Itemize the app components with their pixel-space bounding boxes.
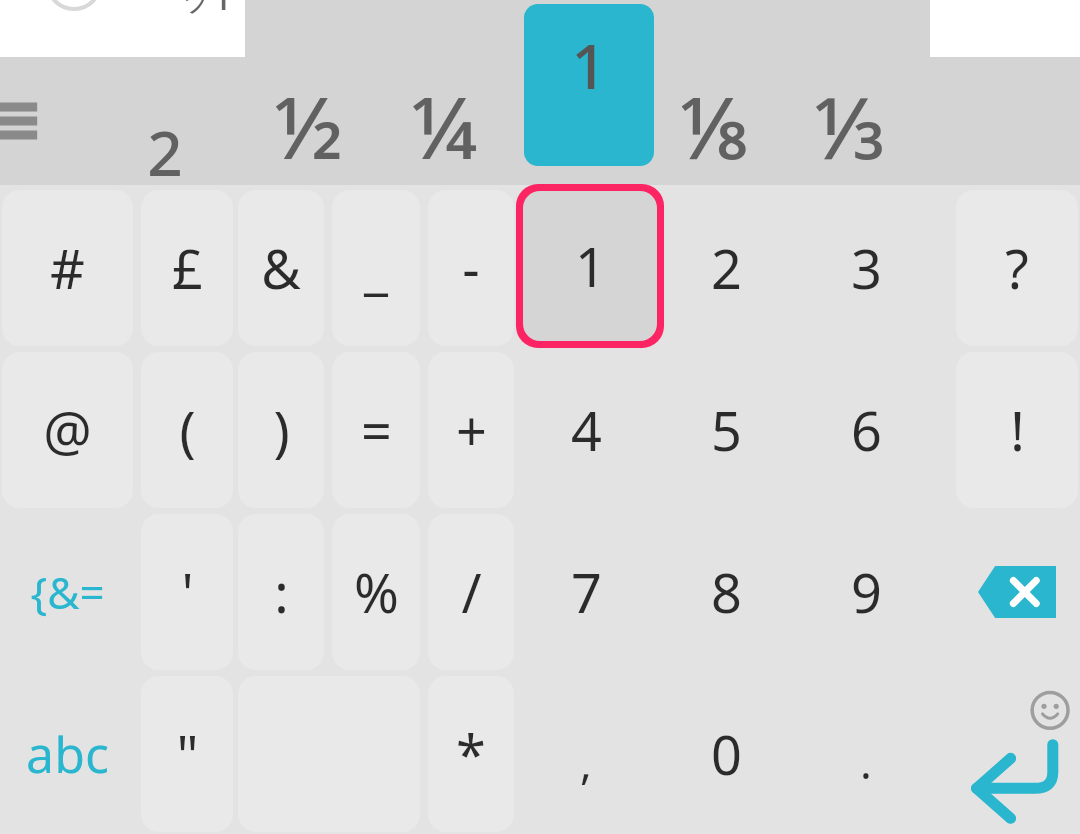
button[interactable]: abc (2, 676, 133, 832)
button[interactable]: Delete (956, 514, 1078, 670)
button[interactable]: % (332, 514, 420, 670)
button[interactable]: £ (141, 190, 233, 346)
button[interactable]: 9 (812, 514, 920, 670)
button[interactable]: ( (141, 352, 233, 508)
staticText: £ (172, 231, 203, 305)
staticText: ' (181, 555, 194, 629)
staticText: , (580, 732, 592, 792)
button[interactable]: ⅛ (655, 67, 775, 177)
button[interactable]: 8 (672, 514, 780, 670)
button[interactable]: ¼ (383, 67, 503, 177)
button[interactable]: # (2, 190, 133, 346)
button[interactable]: 0 (672, 676, 780, 832)
button[interactable]: " (141, 676, 233, 832)
button[interactable]: 3 (812, 190, 920, 346)
staticText: ッ1 (178, 0, 233, 20)
button[interactable]: @ (2, 352, 133, 508)
button[interactable]: * (428, 676, 514, 832)
staticText: ! (1010, 393, 1025, 467)
button[interactable]: ? (956, 190, 1078, 346)
staticText: 1 (575, 229, 606, 303)
staticText: / (461, 555, 482, 629)
button[interactable]: = (332, 352, 420, 508)
staticText: . (860, 732, 872, 792)
button[interactable]: & (238, 190, 324, 346)
staticText: abc (26, 720, 109, 788)
staticText: + (456, 393, 487, 467)
button[interactable]: 5 (672, 352, 780, 508)
button[interactable]: ½ (248, 67, 368, 177)
staticText: ( (179, 393, 196, 467)
staticText: ? (1005, 231, 1029, 305)
staticText: 2 (711, 231, 742, 305)
button[interactable]: : (238, 514, 324, 670)
button[interactable]: 1 (516, 184, 664, 348)
button[interactable]: , (532, 676, 640, 832)
button[interactable]: _ (332, 190, 420, 346)
button[interactable]: 2 (672, 190, 780, 346)
button[interactable]: + (428, 352, 514, 508)
staticText: ⅓ (814, 67, 887, 177)
staticText: = (361, 393, 392, 467)
staticText: ½ (274, 67, 343, 177)
button[interactable]: 2 (105, 97, 225, 207)
button[interactable]: ⅓ (790, 67, 910, 177)
staticText: @ (43, 393, 92, 467)
staticText: 8 (711, 555, 742, 629)
staticText: 3 (851, 231, 882, 305)
staticText: 0 (711, 717, 742, 791)
button[interactable]: 4 (532, 352, 640, 508)
button[interactable]: 6 (812, 352, 920, 508)
button[interactable]: . (812, 676, 920, 832)
staticText: _ (364, 231, 388, 305)
button[interactable]: 7 (532, 514, 640, 670)
staticText: {&= (30, 562, 105, 622)
staticText: ⅛ (679, 67, 752, 177)
button[interactable]: Enter (944, 676, 1080, 832)
staticText: " (176, 717, 199, 791)
button[interactable]: / (428, 514, 514, 670)
staticText: 4 (571, 393, 602, 467)
button[interactable]: Menu (0, 82, 52, 160)
staticText: : (274, 555, 289, 629)
staticText: - (462, 231, 480, 305)
staticText: * (456, 717, 486, 791)
staticText: & (261, 231, 301, 305)
staticText: ¼ (410, 67, 477, 177)
staticText: 7 (571, 555, 602, 629)
staticText: 9 (851, 555, 882, 629)
button[interactable]: ! (956, 352, 1078, 508)
button[interactable]: 1 (524, 4, 654, 166)
staticText: 6 (851, 393, 882, 467)
staticText: ) (273, 393, 290, 467)
staticText: 5 (711, 393, 742, 467)
staticText: 1 (571, 23, 607, 107)
staticText: % (354, 555, 399, 629)
button[interactable]: ) (238, 352, 324, 508)
button[interactable]: {&= (2, 514, 133, 670)
button[interactable]: - (428, 190, 514, 346)
staticText: # (50, 231, 85, 305)
staticText: 2 (147, 110, 183, 194)
button[interactable]: ' (141, 514, 233, 670)
